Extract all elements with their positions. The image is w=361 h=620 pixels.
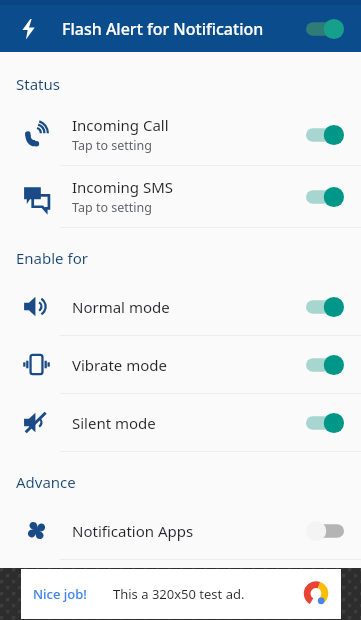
button[interactable]: Notification apps — [303, 516, 347, 546]
button[interactable]: Vibrate mode — [303, 350, 347, 380]
staticText: Tap to setting — [72, 199, 152, 216]
button[interactable]: Vibrate mode — [0, 336, 361, 393]
staticText: Normal mode — [72, 297, 170, 317]
staticText: Notification Apps — [72, 521, 194, 541]
staticText: Incoming SMS — [72, 177, 173, 197]
button[interactable]: Incoming SMS — [0, 166, 361, 227]
button[interactable]: Notification Apps — [0, 502, 361, 559]
button[interactable]: Normal mode — [303, 292, 347, 322]
button[interactable]: Silent mode — [0, 394, 361, 451]
staticText: Incoming Call — [72, 115, 169, 135]
button[interactable]: Silent mode — [303, 408, 347, 438]
staticText: Flash Alert for Notification — [62, 18, 264, 40]
staticText: Status — [16, 74, 60, 94]
button[interactable]: Nice job! — [0, 568, 361, 620]
staticText: Nice job! — [33, 585, 87, 603]
button[interactable]: Incoming Call — [0, 104, 361, 165]
button[interactable]: Normal mode — [0, 278, 361, 335]
staticText: Vibrate mode — [72, 355, 167, 375]
button[interactable]: Incoming SMS flash alert — [303, 182, 347, 212]
staticText: Enable for — [16, 248, 88, 268]
button[interactable]: Master flash alert toggle — [303, 14, 347, 44]
staticText: This a 320x50 test ad. — [113, 585, 245, 603]
staticText: Silent mode — [72, 413, 156, 433]
staticText: Tap to setting — [72, 137, 152, 154]
staticText: Advance — [16, 472, 76, 492]
button[interactable]: Incoming call flash alert — [303, 120, 347, 150]
